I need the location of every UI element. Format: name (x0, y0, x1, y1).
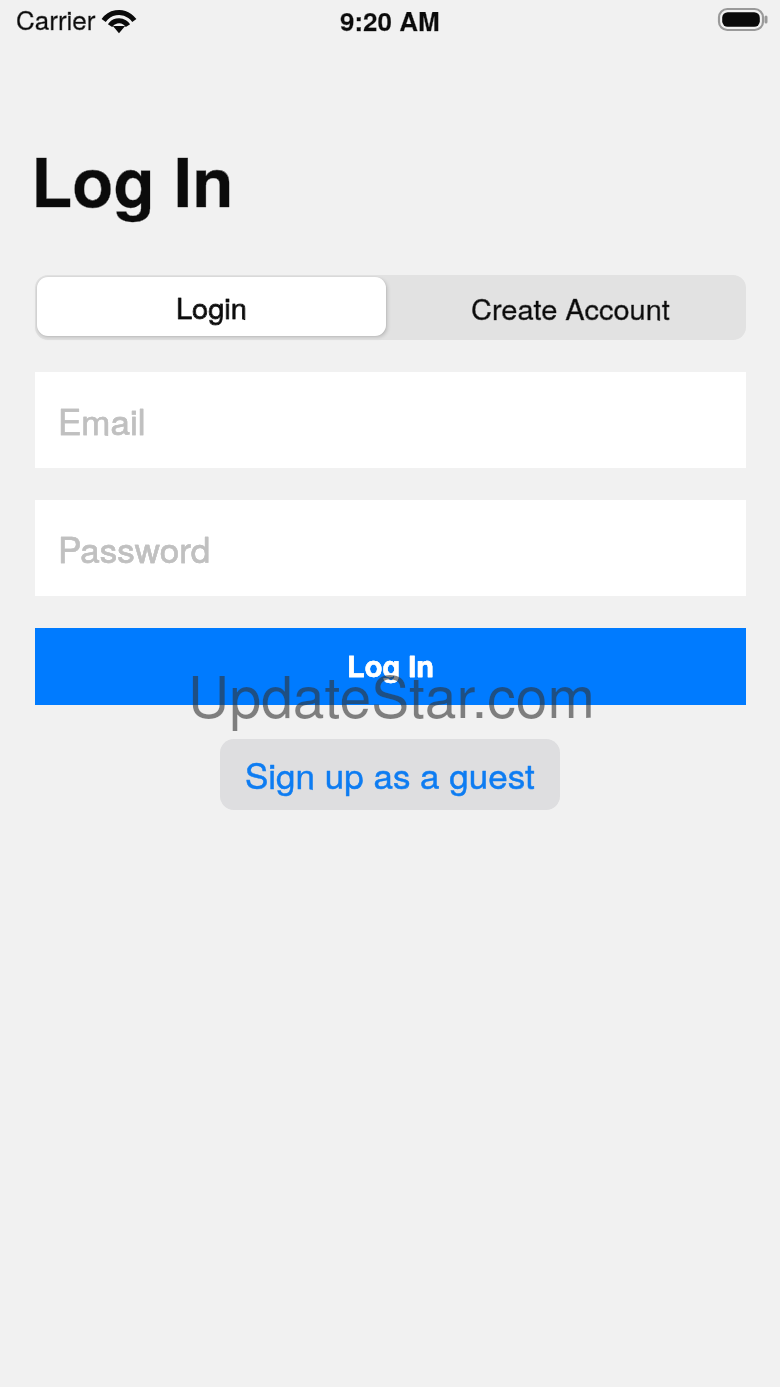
staticText: Log In (347, 644, 435, 686)
staticText: Sign up as a guest (245, 749, 535, 799)
staticText: Carrier (16, 0, 96, 37)
button[interactable]: Sign up as a guest (220, 739, 560, 810)
staticText: UpdateStar.com (188, 653, 595, 735)
button[interactable]: Email (35, 372, 746, 468)
staticText: Sign up as a guest (245, 749, 535, 799)
staticText: Log In (31, 131, 234, 228)
staticText: 9:20 AM (340, 2, 440, 39)
staticText: 9:20 AM (340, 2, 440, 39)
staticText: Email (58, 395, 146, 445)
button[interactable]: Create Account (390, 275, 750, 340)
other: Battery full (718, 8, 770, 31)
button[interactable]: Login (37, 277, 386, 336)
staticText: Create Account (471, 287, 670, 329)
staticText: Create Account (471, 287, 670, 329)
staticText: Email (58, 395, 146, 445)
button[interactable]: Password (35, 500, 746, 596)
staticText: Log In (31, 131, 234, 228)
staticText: Password (58, 523, 211, 573)
staticText: Login (176, 286, 247, 328)
staticText: Login (176, 286, 247, 328)
other: Wi-Fi signal (102, 8, 136, 32)
staticText: Log In (347, 644, 435, 686)
staticText: Carrier (16, 0, 96, 37)
button[interactable]: Log In (35, 628, 746, 705)
staticText: Password (58, 523, 211, 573)
